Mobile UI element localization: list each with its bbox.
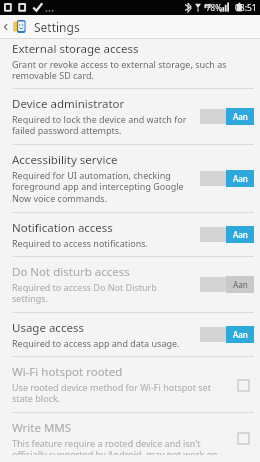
button[interactable]: Wi-Fi hotspot rooted: [0, 357, 260, 412]
button[interactable]: External storage access: [0, 41, 260, 88]
button[interactable]: Aan: [200, 108, 254, 125]
staticText: Aan: [233, 279, 248, 290]
staticText: Settings: [34, 19, 80, 35]
staticText: Required to access notifications.: [12, 237, 149, 249]
staticText: Notification access: [12, 220, 113, 236]
staticText: 78%: [206, 2, 222, 13]
button[interactable]: Aan: [200, 276, 254, 293]
staticText: Accessibility service: [12, 152, 118, 168]
staticText: Grant or revoke access to external stora…: [12, 58, 254, 82]
staticText: Required to access Do Not Disturb settin…: [12, 281, 194, 305]
button[interactable]: Usage access: [0, 313, 260, 356]
staticText: Wi-Fi hotspot rooted: [12, 364, 123, 380]
button[interactable]: Do Not disturb access: [0, 257, 260, 312]
button[interactable]: Accessibility service: [0, 145, 260, 212]
button[interactable]: Checkbox: [232, 427, 254, 449]
staticText: Required to lock the device and watch fo…: [12, 113, 194, 137]
button[interactable]: Notification access: [0, 213, 260, 256]
staticText: Aan: [233, 329, 248, 340]
staticText: Aan: [233, 229, 248, 240]
button[interactable]: Aan: [200, 326, 254, 343]
staticText: 08:51: [235, 2, 257, 14]
staticText: Write MMS: [12, 420, 72, 436]
button[interactable]: Aan: [200, 170, 254, 187]
button[interactable]: Back: [0, 15, 12, 38]
staticText: Device administrator: [12, 96, 125, 112]
staticText: Required for UI automation, checking for…: [12, 169, 194, 205]
staticText: Required to access app and data usage.: [12, 337, 180, 349]
staticText: Usage access: [12, 320, 84, 336]
staticText: External storage access: [12, 41, 139, 57]
staticText: Aan: [233, 173, 248, 184]
staticText: Aan: [233, 111, 248, 122]
button[interactable]: Write MMS: [0, 413, 260, 462]
button[interactable]: Aan: [200, 226, 254, 243]
staticText: Do Not disturb access: [12, 264, 130, 280]
button[interactable]: Device administrator: [0, 89, 260, 144]
staticText: This feature require a rooted device and…: [12, 437, 226, 455]
button[interactable]: Checkbox: [232, 374, 254, 396]
staticText: Use rooted device method for Wi-Fi hotsp…: [12, 381, 226, 405]
